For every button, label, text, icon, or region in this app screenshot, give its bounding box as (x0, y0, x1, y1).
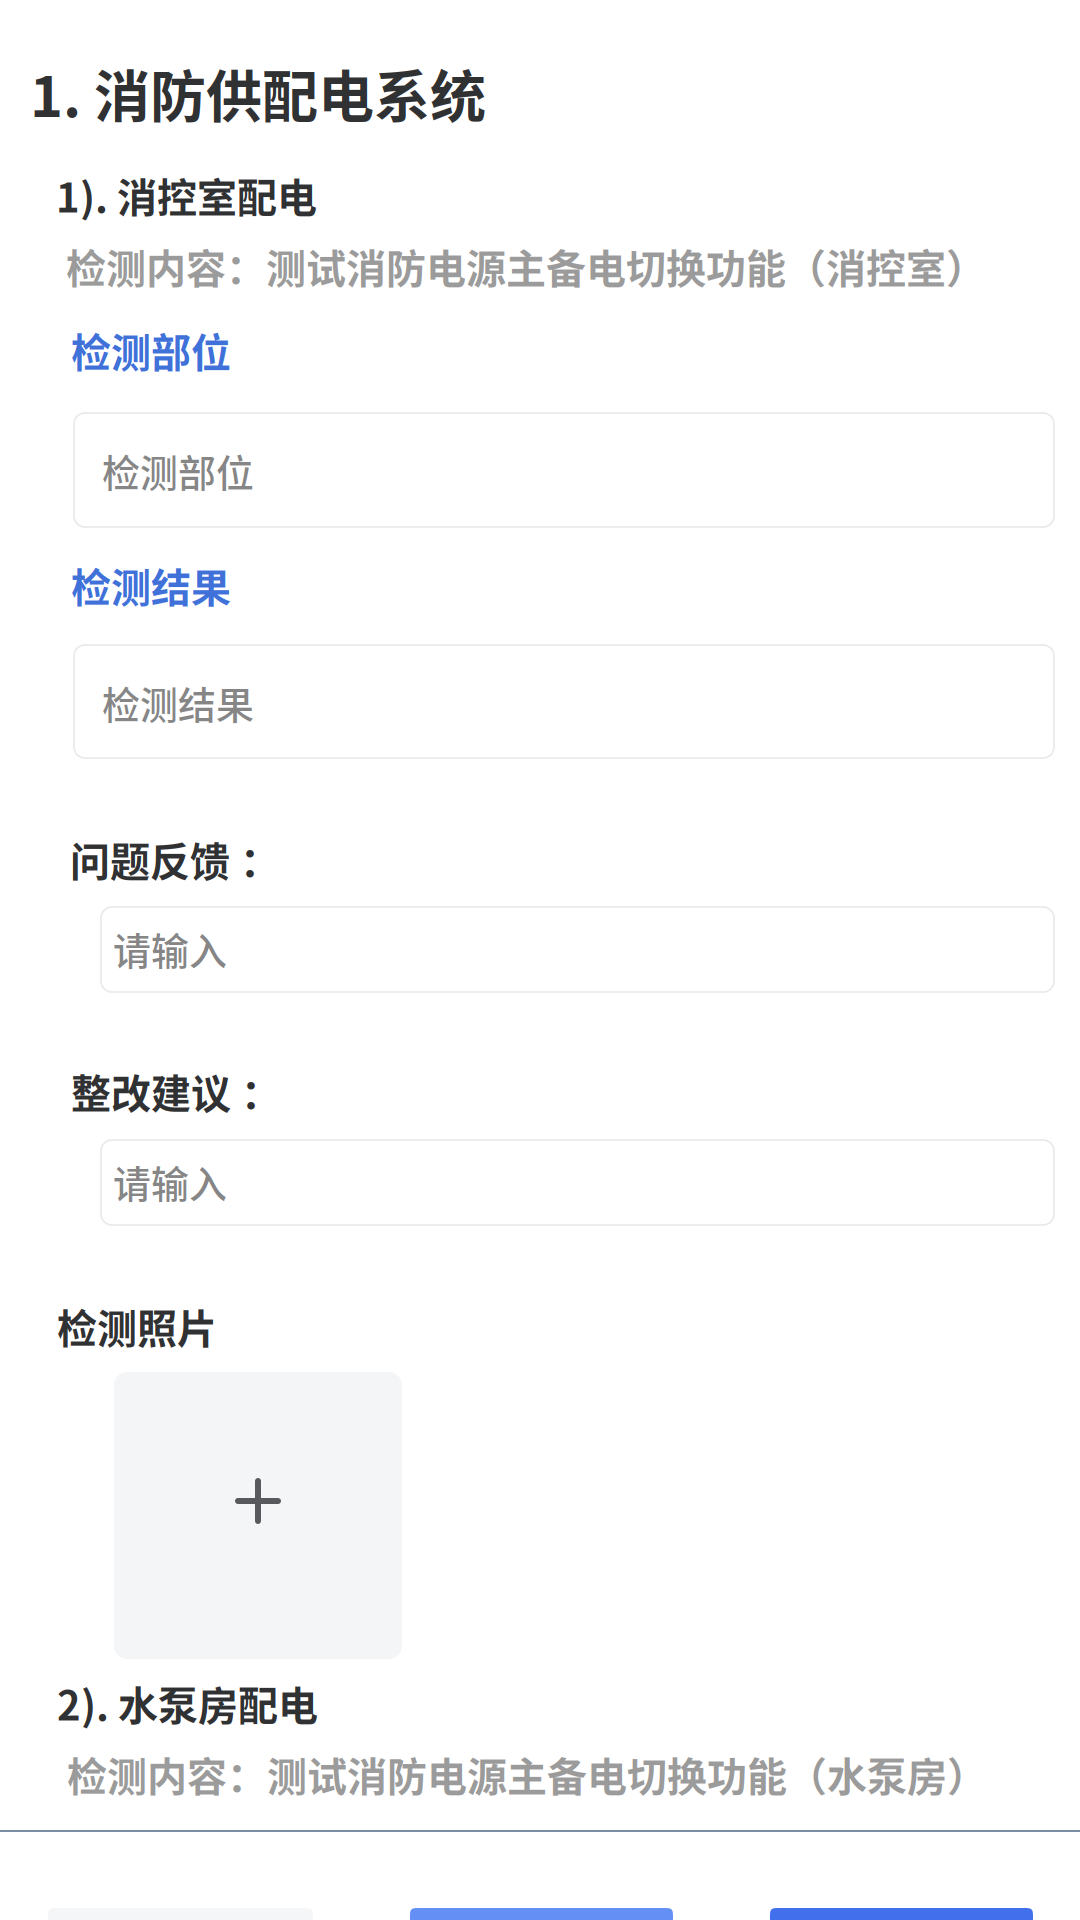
button[interactable]: 请输入 (101, 1140, 1054, 1225)
button[interactable]: 检测结果 (74, 645, 1054, 758)
staticText: 检测内容：测试消防电源主备电切换功能（水泵房） (67, 1745, 987, 1803)
staticText: 检测结果 (71, 556, 231, 614)
staticText: ： (241, 1062, 281, 1120)
staticText: 检测部位 (102, 443, 254, 498)
staticText: 请输入 (113, 1154, 227, 1209)
button[interactable]: 上一项 (410, 1908, 673, 1920)
staticText: 检测结果 (102, 675, 254, 730)
staticText: 请输入 (113, 921, 227, 976)
staticText: 1. 消防供配电系统 (30, 52, 486, 133)
button[interactable]: 下一项 (770, 1908, 1033, 1920)
staticText: 检测照片 (57, 1297, 217, 1355)
staticText: 1). 消控室配电 (56, 166, 317, 224)
staticText: 2). 水泵房配电 (57, 1674, 318, 1732)
button[interactable]: 检测部位 (74, 413, 1054, 527)
staticText: ： (240, 830, 280, 888)
staticText: 问题反馈 (70, 830, 230, 888)
staticText: 整改建议 (71, 1062, 231, 1120)
staticText: 检测内容：测试消防电源主备电切换功能（消控室） (66, 237, 986, 295)
button[interactable]: 添加检测照片 (114, 1372, 402, 1659)
staticText: 检测部位 (71, 321, 231, 379)
button[interactable]: 请输入 (101, 907, 1054, 992)
